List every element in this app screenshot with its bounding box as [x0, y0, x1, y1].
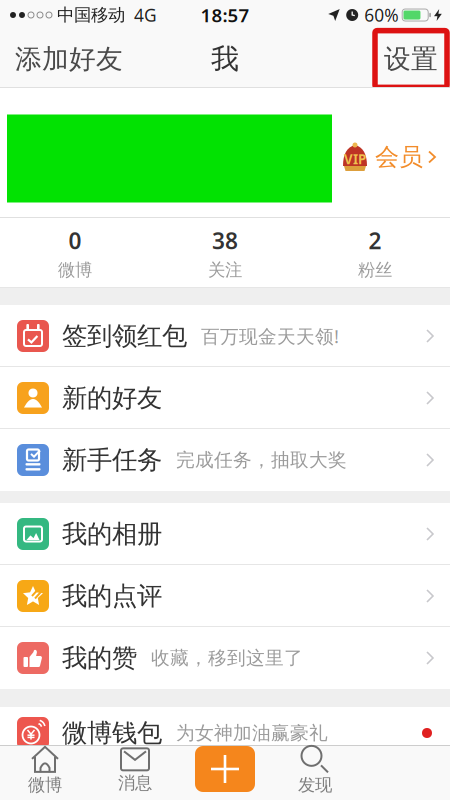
staticText: 消息 [118, 772, 152, 794]
button[interactable]: 签到领红包 [0, 305, 450, 367]
staticText: 0 [68, 225, 81, 255]
button[interactable]: 38 [150, 218, 300, 288]
button[interactable]: 微博钱包 [0, 707, 450, 745]
staticText: 为女神加油赢豪礼 [176, 721, 328, 744]
button[interactable]: VIP [340, 134, 450, 172]
staticText: 添加好友 [15, 43, 123, 75]
button[interactable]: 我的赞 [0, 627, 450, 689]
staticText: 60% [364, 3, 398, 26]
staticText: 中国移动 [57, 4, 125, 26]
button[interactable]: 我的点评 [0, 565, 450, 627]
button[interactable]: 2 [300, 218, 450, 288]
staticText: 4G [134, 3, 157, 26]
staticText: VIP [344, 150, 366, 168]
staticText: 我的相册 [62, 518, 162, 549]
staticText: 发现 [298, 774, 332, 796]
staticText: 我的赞 [62, 642, 137, 673]
staticText: 签到领红包 [62, 320, 187, 351]
staticText: 微博 [58, 259, 92, 281]
staticText: 完成任务，抽取大奖 [176, 448, 347, 471]
staticText: 微博钱包 [62, 717, 162, 748]
button[interactable]: 新手任务 [0, 429, 450, 491]
staticText: 18:57 [200, 3, 249, 27]
staticText: 设置 [384, 43, 438, 75]
staticText: 2 [368, 225, 381, 255]
staticText: 新的好友 [62, 382, 162, 413]
staticText: 38 [212, 225, 238, 255]
button[interactable]: 新的好友 [0, 367, 450, 429]
button[interactable]: 我的相册 [0, 503, 450, 565]
staticText: 我的点评 [62, 580, 162, 611]
button[interactable]: 设置 [375, 31, 447, 87]
button[interactable]: 0 [0, 218, 150, 288]
button[interactable]: 微博 [0, 745, 90, 800]
button[interactable]: 发现 [270, 745, 360, 800]
staticText: 百万现金天天领! [201, 324, 339, 348]
staticText: 关注 [208, 259, 242, 281]
staticText: 收藏，移到这里了 [151, 646, 303, 669]
staticText: 粉丝 [358, 259, 392, 281]
staticText: 会员 [375, 142, 423, 172]
button[interactable]: 发布 [180, 745, 270, 800]
button[interactable]: 消息 [90, 745, 180, 800]
staticText: 微博 [28, 774, 62, 796]
button[interactable]: 添加好友 [15, 43, 123, 75]
staticText: 我 [211, 42, 239, 76]
staticText: 新手任务 [62, 444, 162, 475]
